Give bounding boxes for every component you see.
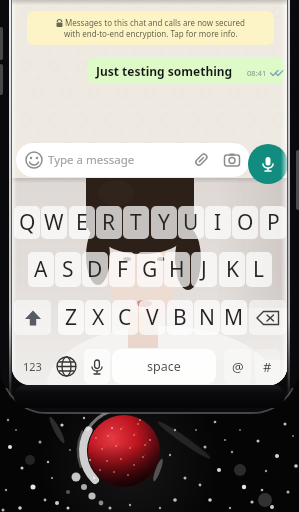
staticText: M — [224, 303, 244, 332]
staticText: P — [267, 208, 280, 237]
staticText: with end-to-end encryption. Tap for more… — [64, 28, 238, 39]
staticText: Q — [19, 208, 36, 237]
staticText: N — [199, 303, 215, 332]
staticText: W — [44, 208, 64, 237]
button[interactable]: N — [194, 300, 220, 335]
staticText: F — [117, 255, 128, 284]
button[interactable]: D — [82, 252, 108, 287]
button[interactable]: Just testing something — [87, 57, 285, 84]
button[interactable]: A — [28, 252, 54, 287]
staticText: T — [130, 208, 142, 237]
button[interactable]: Z — [58, 300, 84, 335]
staticText: L — [253, 255, 265, 284]
button[interactable]: G — [137, 252, 163, 287]
staticText: Z — [65, 303, 78, 332]
button[interactable]: L — [246, 252, 272, 287]
staticText: R — [102, 208, 116, 237]
staticText: D — [87, 255, 103, 284]
button[interactable]: Messages to this chat and calls are now … — [27, 11, 274, 45]
staticText: C — [118, 303, 132, 332]
staticText: H — [169, 255, 185, 284]
staticText: S — [62, 255, 74, 284]
staticText: K — [226, 255, 239, 284]
button[interactable]: V — [139, 300, 165, 335]
button[interactable]: W — [41, 206, 67, 239]
staticText: O — [237, 208, 254, 237]
button[interactable]: space — [112, 349, 216, 384]
button[interactable]: K — [219, 252, 245, 287]
staticText: Messages to this chat and calls are now … — [65, 17, 245, 28]
button[interactable]: H — [164, 252, 190, 287]
button[interactable]: S — [55, 252, 81, 287]
staticText: B — [173, 303, 187, 332]
button[interactable]: B — [167, 300, 193, 335]
staticText: @ — [232, 358, 244, 376]
button[interactable] — [84, 349, 110, 384]
button[interactable]: O — [232, 206, 258, 239]
button[interactable]: T — [123, 206, 149, 239]
staticText: Type a message — [48, 152, 135, 168]
staticText: X — [92, 303, 105, 332]
staticText: E — [76, 208, 88, 237]
staticText: A — [34, 255, 48, 284]
staticText: 123 — [23, 359, 42, 374]
button[interactable]: # — [255, 349, 280, 384]
staticText: # — [263, 358, 272, 376]
staticText: J — [201, 255, 207, 284]
button[interactable] — [248, 144, 287, 184]
button[interactable] — [14, 300, 51, 335]
staticText: V — [146, 303, 159, 332]
staticText: G — [142, 255, 158, 284]
staticText: U — [183, 208, 199, 237]
button[interactable]: I — [205, 206, 231, 239]
staticText: Just testing something — [96, 63, 233, 79]
staticText: I — [214, 208, 222, 237]
button[interactable]: Q — [14, 206, 40, 239]
staticText: Y — [158, 208, 170, 237]
button[interactable]: P — [260, 206, 286, 239]
button[interactable]: 123 — [18, 349, 46, 384]
button[interactable]: E — [69, 206, 95, 239]
button[interactable]: C — [112, 300, 138, 335]
button[interactable]: X — [85, 300, 111, 335]
button[interactable]: M — [221, 300, 247, 335]
button[interactable]: U — [178, 206, 204, 239]
button[interactable]: @ — [224, 349, 251, 384]
button[interactable]: Y — [151, 206, 177, 239]
staticText: 08:41 — [247, 68, 267, 78]
staticText: space — [147, 358, 181, 375]
button[interactable]: R — [96, 206, 122, 239]
button[interactable]: J — [191, 252, 217, 287]
button[interactable]: F — [109, 252, 135, 287]
button[interactable] — [249, 300, 286, 335]
button[interactable] — [53, 349, 80, 384]
button[interactable]: Type a message — [16, 143, 250, 177]
